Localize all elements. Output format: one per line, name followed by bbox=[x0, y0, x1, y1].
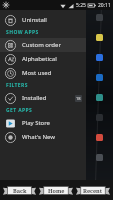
button[interactable]: Alphabetical bbox=[0, 52, 86, 66]
staticText: SHOW APPS bbox=[6, 29, 39, 36]
staticText: 18 bbox=[76, 96, 81, 101]
staticText: Back bbox=[13, 187, 27, 194]
staticText: Home bbox=[48, 187, 65, 194]
staticText: Uninstall bbox=[22, 16, 82, 24]
staticText: Play Store bbox=[22, 119, 82, 127]
staticText: What's New bbox=[22, 133, 82, 141]
staticText: FILTERS bbox=[6, 82, 28, 89]
staticText: Custom order bbox=[22, 41, 82, 49]
button[interactable]: Home bbox=[39, 185, 73, 196]
staticText: GET APPS bbox=[6, 107, 33, 114]
button[interactable]: Play Store bbox=[0, 116, 86, 130]
button[interactable]: Installed bbox=[0, 91, 86, 105]
button[interactable]: What's New bbox=[0, 130, 86, 144]
staticText: 5:25 bbox=[76, 2, 86, 9]
staticText: Alphabetical bbox=[22, 55, 82, 63]
staticText: Most used bbox=[22, 69, 82, 77]
staticText: Recent bbox=[83, 187, 103, 194]
staticText: 20:11 bbox=[98, 2, 111, 9]
staticText: Installed bbox=[22, 94, 75, 102]
button[interactable]: Recent apps bbox=[76, 185, 110, 196]
button[interactable]: Most used bbox=[0, 66, 86, 80]
button[interactable]: Custom order bbox=[0, 38, 86, 52]
button[interactable]: Uninstall bbox=[0, 13, 86, 27]
button[interactable]: Back bbox=[3, 185, 36, 196]
